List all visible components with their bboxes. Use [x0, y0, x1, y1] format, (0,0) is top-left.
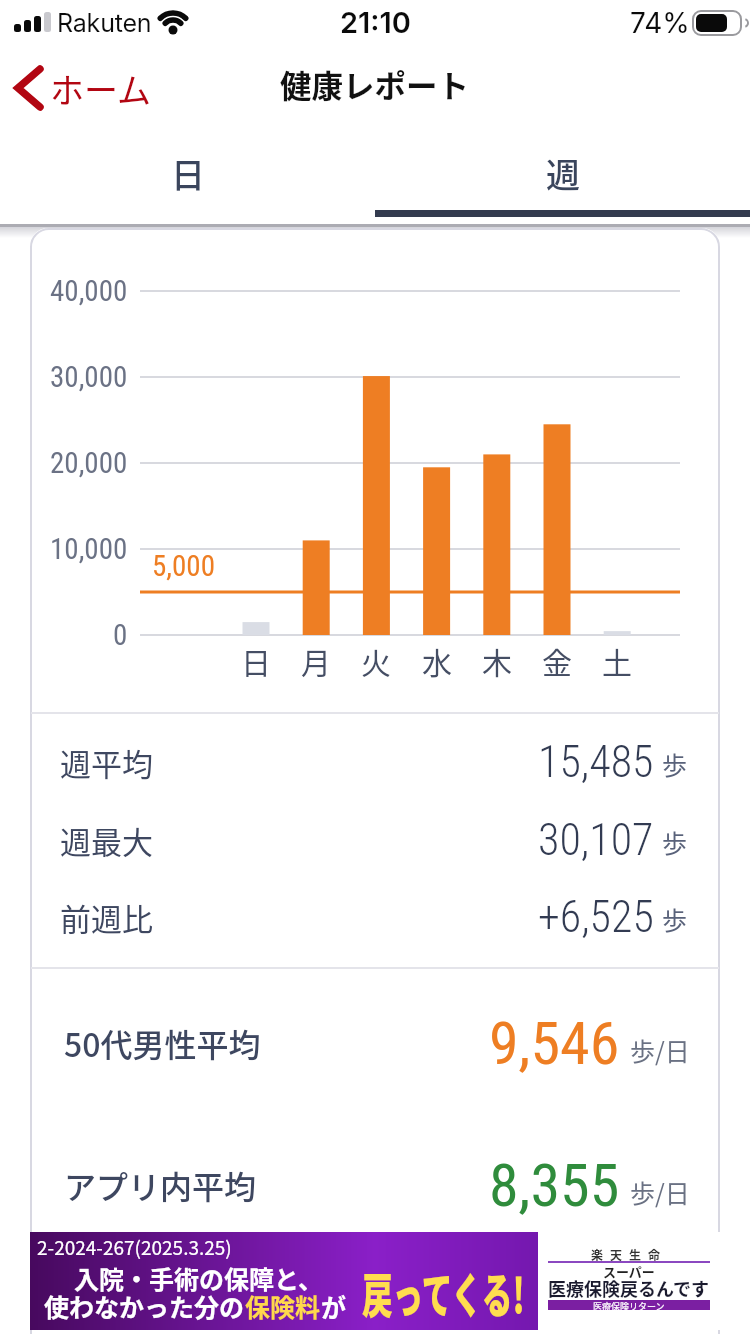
staticText: アプリ内平均 [64, 1162, 257, 1208]
staticText: 前週比 [60, 895, 153, 940]
staticText: 30,000 [50, 360, 128, 394]
staticText: 金 [542, 639, 572, 682]
staticText: 40,000 [50, 274, 128, 308]
button[interactable]: 週 [375, 130, 750, 217]
staticText: 週 [546, 149, 580, 198]
staticText: 月 [301, 639, 331, 682]
staticText: 土 [602, 639, 632, 682]
staticText: 水 [422, 639, 452, 682]
staticText: 歩 [662, 746, 688, 782]
staticText: 歩/日 [630, 1174, 690, 1210]
staticText: 歩/日 [630, 1032, 690, 1068]
staticText: 0 [113, 618, 128, 652]
button[interactable]: ホーム [8, 58, 157, 119]
staticText: が [321, 1288, 347, 1324]
staticText: 15,485 [538, 736, 654, 788]
button[interactable]: 日 [0, 130, 375, 217]
staticText: 医療保険リターン [593, 1300, 665, 1310]
button[interactable]: 2-2024-267(2025.3.25) [30, 1232, 720, 1330]
staticText: 週平均 [60, 740, 153, 785]
staticText: 使わなかった分の [44, 1288, 245, 1324]
staticText: 楽天生命 [591, 1246, 668, 1263]
staticText: 戻ってくる! [362, 1257, 525, 1327]
staticText: 医療保険戻るんです [548, 1275, 710, 1301]
staticText: 入院・手術の保障と、 [74, 1260, 324, 1296]
staticText: 50代男性平均 [64, 1020, 261, 1066]
staticText: 日 [171, 149, 205, 198]
staticText: 歩 [662, 824, 688, 860]
staticText: 木 [482, 639, 512, 682]
staticText: 日 [241, 639, 271, 682]
staticText: 8,355 [489, 1150, 620, 1220]
staticText: 火 [361, 639, 391, 682]
staticText: 21:10 [340, 5, 411, 40]
staticText: ホーム [50, 64, 151, 113]
staticText: 30,107 [538, 814, 654, 866]
staticText: 10,000 [50, 532, 128, 566]
staticText: +6,525 [538, 891, 654, 943]
staticText: 健康レポート [280, 61, 470, 107]
staticText: 9,546 [489, 1008, 620, 1078]
staticText: 歩 [662, 901, 688, 937]
staticText: 週最大 [60, 818, 153, 863]
staticText: Rakuten [57, 8, 152, 38]
staticText: 20,000 [50, 446, 128, 480]
staticText: 74% [630, 6, 690, 40]
staticText: 5,000 [152, 549, 215, 583]
staticText: 2-2024-267(2025.3.25) [37, 1233, 232, 1261]
staticText: 保険料 [245, 1288, 321, 1324]
staticText: スーパー [603, 1262, 655, 1280]
